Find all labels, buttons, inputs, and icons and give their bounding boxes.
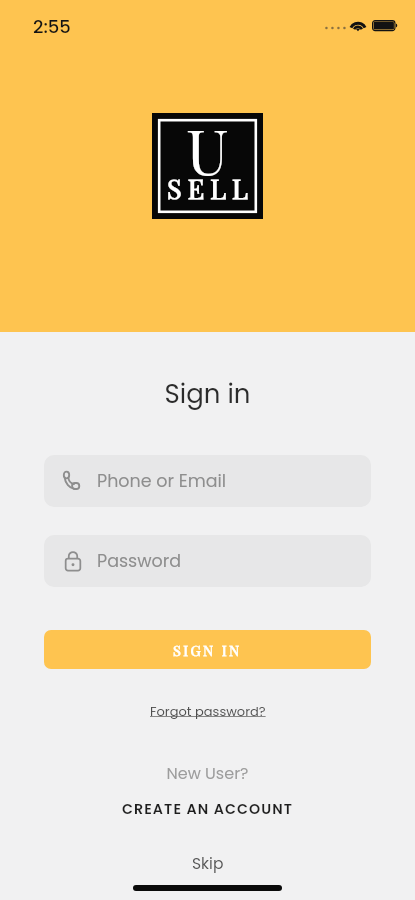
button[interactable]: Skip [178, 849, 238, 879]
staticText: Password [97, 549, 182, 574]
button[interactable]: Forgot password? [140, 697, 276, 725]
button[interactable]: USELL logo [152, 113, 263, 219]
staticText: Skip [192, 853, 224, 875]
button[interactable]: Password input [44, 535, 371, 587]
staticText: Phone or Email [97, 469, 227, 494]
button[interactable]: SIGN IN [44, 630, 371, 669]
staticText: SELL [155, 170, 266, 206]
staticText: SIGN IN [173, 640, 242, 659]
staticText: New User? [0, 762, 415, 784]
staticText: U [152, 108, 263, 191]
staticText: Forgot password? [150, 702, 266, 720]
button[interactable]: Phone or Email input [44, 455, 371, 507]
staticText: Sign in [0, 376, 415, 412]
staticText: 2:55 [33, 14, 71, 39]
staticText: CREATE AN ACCOUNT [122, 799, 294, 817]
button[interactable]: CREATE AN ACCOUNT [112, 794, 304, 822]
